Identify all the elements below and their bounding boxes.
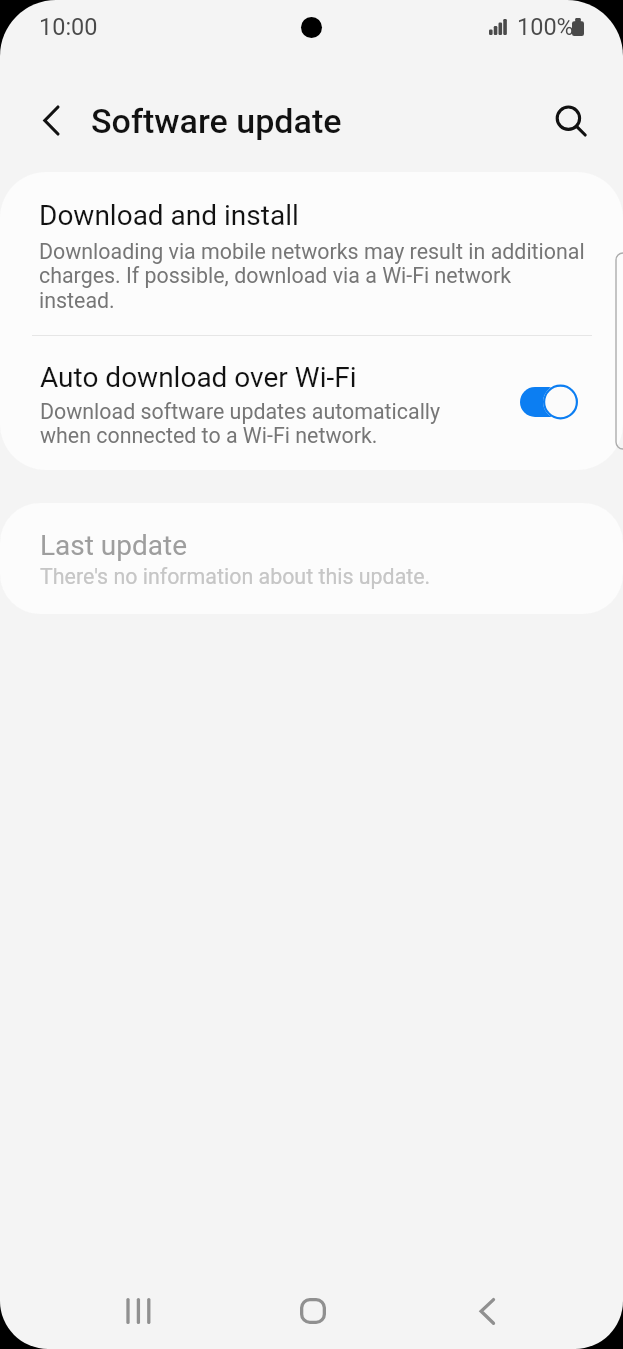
button[interactable]: Back <box>447 1271 527 1349</box>
button[interactable]: Auto download over Wi-Fi <box>520 384 578 420</box>
staticText: 100% <box>517 13 574 41</box>
button[interactable]: Download and install <box>0 172 623 335</box>
button[interactable]: Navigate up <box>24 94 76 146</box>
staticText: Last update <box>40 529 188 562</box>
button[interactable]: Auto download over Wi-Fi <box>0 336 623 470</box>
button[interactable]: Last update <box>0 503 623 614</box>
staticText: 10:00 <box>39 13 98 41</box>
button[interactable]: Search <box>549 95 601 147</box>
staticText: Download software updates automatically … <box>40 399 480 449</box>
staticText: Downloading via mobile networks may resu… <box>39 239 587 314</box>
button[interactable]: Home <box>273 1271 353 1349</box>
staticText: There's no information about this update… <box>40 564 431 589</box>
staticText: Download and install <box>39 199 299 232</box>
button[interactable]: Recent apps <box>98 1271 178 1349</box>
staticText: Auto download over Wi-Fi <box>40 361 357 394</box>
staticText: Software update <box>91 101 342 141</box>
